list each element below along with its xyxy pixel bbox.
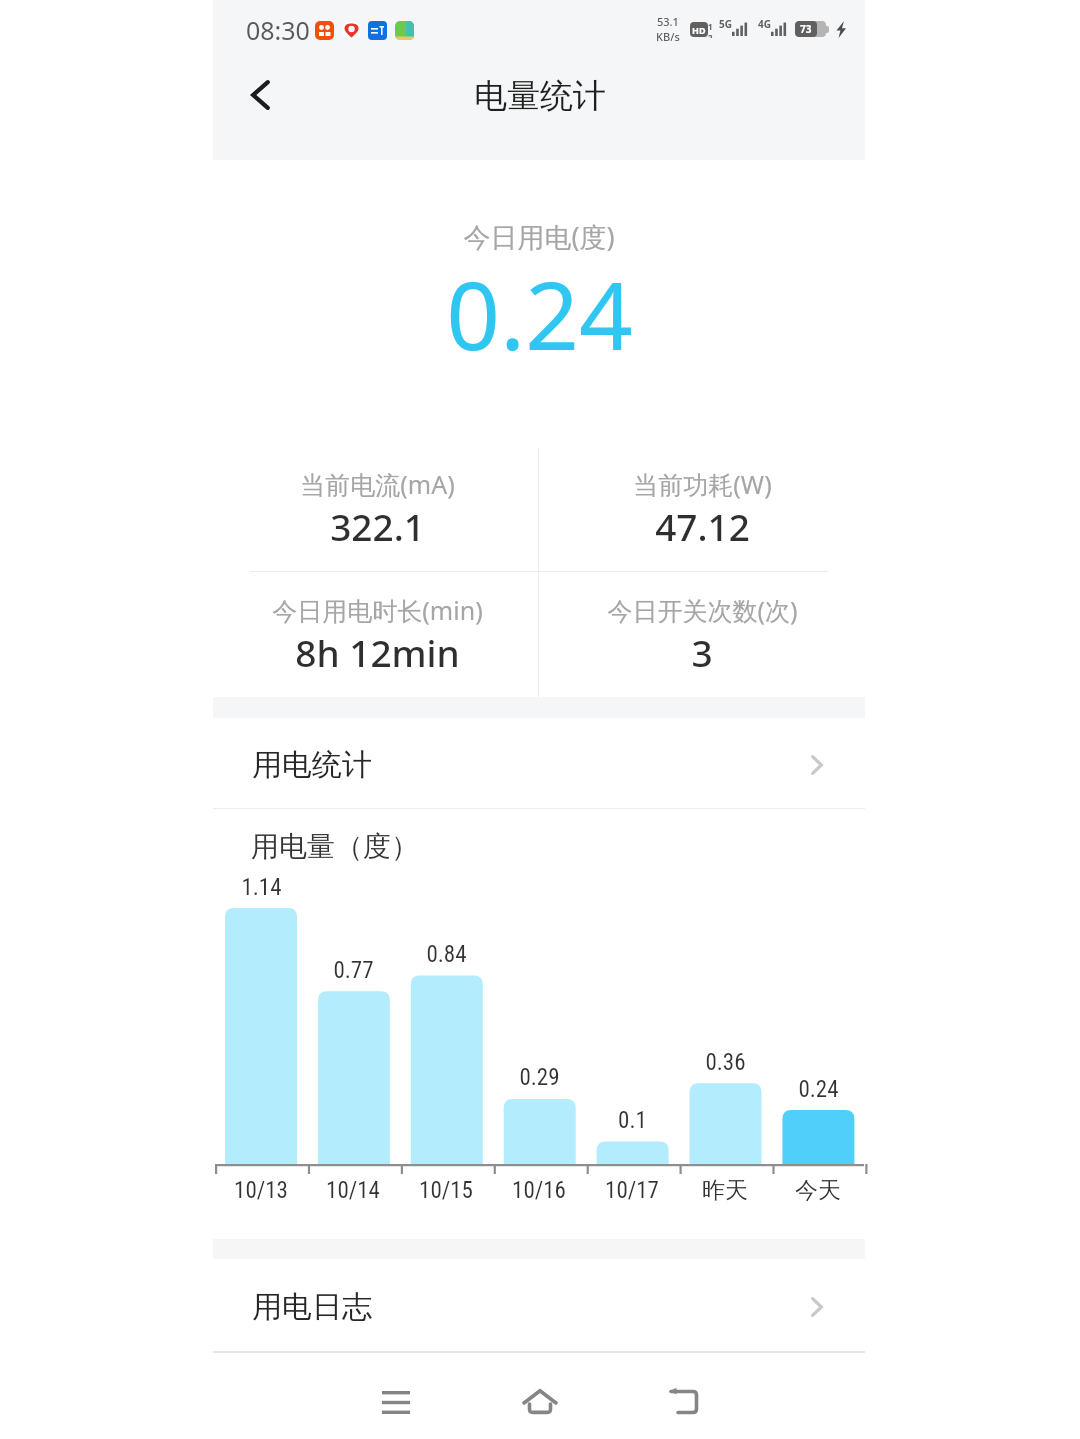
staticText: 47.12 [655,501,750,551]
staticText: 73 [800,22,812,36]
button[interactable]: 用电统计 [213,722,865,807]
staticText: 当前电流(mA) [300,467,455,501]
staticText: 今日用电(度) [463,218,615,255]
staticText: 3 [691,627,713,677]
staticText: 2 [708,32,713,38]
staticText: 1 [708,21,713,32]
button[interactable]: 用电日志 [213,1263,865,1351]
staticText: 当前功耗(W) [633,467,772,501]
staticText: 0.77 [333,957,374,984]
staticText: 用电量（度） [251,829,419,864]
button[interactable]: Back [644,1362,724,1439]
staticText: 10/15 [419,1177,473,1204]
staticText: 用电日志 [252,1288,372,1326]
button[interactable]: Back [222,57,298,133]
staticText: 1.14 [241,874,282,901]
staticText: 0.24 [446,250,633,378]
staticText: 4G [758,17,771,31]
staticText: 10/17 [605,1177,659,1204]
staticText: 昨天 [702,1176,748,1205]
staticText: 0.24 [798,1076,839,1103]
staticText: 0.36 [705,1049,746,1076]
staticText: 10/14 [326,1177,380,1204]
staticText: 322.1 [330,501,425,551]
staticText: 0.29 [519,1064,560,1091]
staticText: 0.1 [618,1107,647,1134]
staticText: 今日用电时长(min) [272,593,483,627]
staticText: HD [692,24,706,36]
staticText: KB/s [656,29,680,44]
staticText: 用电统计 [252,746,372,784]
staticText: 电量统计 [474,75,606,117]
staticText: 今天 [795,1176,841,1205]
staticText: 08:30 [246,13,310,47]
staticText: 0.84 [426,941,467,968]
staticText: 8h 12min [295,627,460,677]
staticText: 今日开关次数(次) [607,593,798,627]
button[interactable]: Recents [356,1362,436,1439]
staticText: 53.1 [657,14,679,29]
staticText: 5G [719,17,732,31]
staticText: 10/13 [234,1177,288,1204]
button[interactable]: Home [500,1362,580,1439]
staticText: 10/16 [512,1177,566,1204]
